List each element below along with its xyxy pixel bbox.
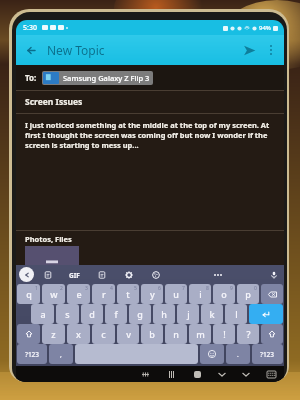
button[interactable]: s (56, 304, 79, 324)
staticText: c (101, 328, 106, 340)
button[interactable]: More (214, 274, 222, 276)
button[interactable]: g (129, 304, 151, 324)
button[interactable]: Shift (261, 324, 283, 344)
button[interactable]: Home (184, 366, 210, 382)
staticText: n (173, 328, 179, 340)
button[interactable]: i (189, 284, 211, 304)
staticText: ! (223, 328, 226, 340)
button[interactable]: Emoji (200, 344, 224, 364)
staticText: k (209, 308, 215, 320)
staticText: t (126, 288, 130, 300)
button[interactable]: sticker (34, 267, 61, 283)
staticText: To: (25, 72, 37, 83)
button[interactable]: Hide keyboard (258, 366, 284, 382)
button[interactable]: More options (262, 39, 280, 61)
button[interactable]: , (49, 344, 73, 364)
button[interactable]: . (226, 344, 250, 364)
button[interactable]: gif (61, 267, 88, 283)
staticText: e (76, 288, 82, 300)
button[interactable]: To: (25, 65, 275, 90)
staticText: g (137, 308, 143, 320)
button[interactable]: v (117, 324, 139, 344)
button[interactable]: ? (237, 324, 259, 344)
button[interactable]: Space (75, 344, 198, 364)
button[interactable]: Screen Issues (25, 91, 275, 113)
button[interactable]: theme (142, 267, 169, 283)
button[interactable]: n (165, 324, 187, 344)
button[interactable]: k (201, 304, 223, 324)
button[interactable]: ?123 (252, 344, 283, 364)
button[interactable]: Send (236, 37, 262, 63)
button[interactable]: d (81, 304, 103, 324)
staticText: ?123 (25, 350, 40, 359)
button[interactable]: a (31, 304, 54, 324)
staticText: o (221, 288, 227, 300)
button[interactable]: m (189, 324, 211, 344)
button[interactable]: c (92, 324, 115, 344)
button[interactable]: b (141, 324, 163, 344)
staticText: i (199, 288, 202, 300)
button[interactable]: clip (88, 267, 115, 283)
staticText: u (173, 288, 179, 300)
button[interactable]: Voice input (266, 267, 281, 282)
button[interactable]: Collapse (210, 366, 234, 382)
staticText: 0 (254, 285, 257, 292)
staticText: p (245, 288, 251, 300)
button[interactable]: y (141, 284, 163, 304)
staticText: , (60, 350, 62, 359)
staticText: b (149, 328, 155, 340)
staticText: z (51, 328, 56, 340)
staticText: j (187, 308, 190, 320)
button[interactable]: Enter (249, 304, 283, 324)
staticText: New Topic (47, 42, 105, 58)
staticText: 5 (134, 285, 137, 292)
staticText: 2 (60, 285, 63, 292)
staticText: 5:30 (23, 23, 37, 33)
button[interactable]: r (92, 284, 115, 304)
button[interactable]: I just noticed something at the middle a… (25, 120, 275, 224)
staticText: m (196, 328, 205, 340)
button[interactable]: f (105, 304, 127, 324)
staticText: Photos, Files (25, 234, 72, 244)
staticText: 6 (158, 285, 161, 292)
button[interactable]: x (67, 324, 90, 344)
button[interactable]: Back (20, 39, 42, 61)
button[interactable]: Samsung Galaxy Z Flip 3 (42, 71, 153, 85)
staticText: d (89, 308, 95, 320)
button[interactable]: z (42, 324, 65, 344)
button[interactable]: j (177, 304, 199, 324)
button[interactable]: Backspace (261, 284, 283, 304)
button[interactable]: p (237, 284, 259, 304)
button[interactable] (25, 246, 79, 265)
button[interactable]: Recents (158, 366, 184, 382)
staticText: 7 (182, 285, 185, 292)
staticText: I just noticed something at the middle a… (25, 120, 275, 150)
staticText: 8 (206, 285, 209, 292)
staticText: Screen Issues (25, 96, 83, 108)
staticText: ?123 (260, 350, 275, 359)
staticText: ? (246, 328, 251, 340)
staticText: l (235, 308, 238, 320)
button[interactable]: Shift (17, 324, 40, 344)
button[interactable]: u (165, 284, 187, 304)
button[interactable]: Collapse (234, 366, 258, 382)
button[interactable]: gear (115, 267, 142, 283)
button[interactable]: ! (213, 324, 235, 344)
staticText: . (237, 350, 239, 359)
staticText: v (126, 328, 131, 340)
button[interactable]: o (213, 284, 235, 304)
button[interactable]: h (153, 304, 175, 324)
button[interactable]: q (17, 284, 40, 304)
button[interactable]: l (225, 304, 247, 324)
staticText: Samsung Galaxy Z Flip 3 (63, 73, 150, 83)
staticText: 1 (35, 285, 38, 292)
button[interactable]: e (67, 284, 90, 304)
button[interactable]: Expand toolbar (19, 267, 34, 282)
button[interactable]: Split screen (132, 366, 158, 382)
button[interactable]: w (42, 284, 65, 304)
staticText: h (161, 308, 167, 320)
button[interactable]: ?123 (17, 344, 47, 364)
button[interactable]: t (117, 284, 139, 304)
staticText: x (76, 328, 81, 340)
staticText: q (26, 288, 32, 300)
